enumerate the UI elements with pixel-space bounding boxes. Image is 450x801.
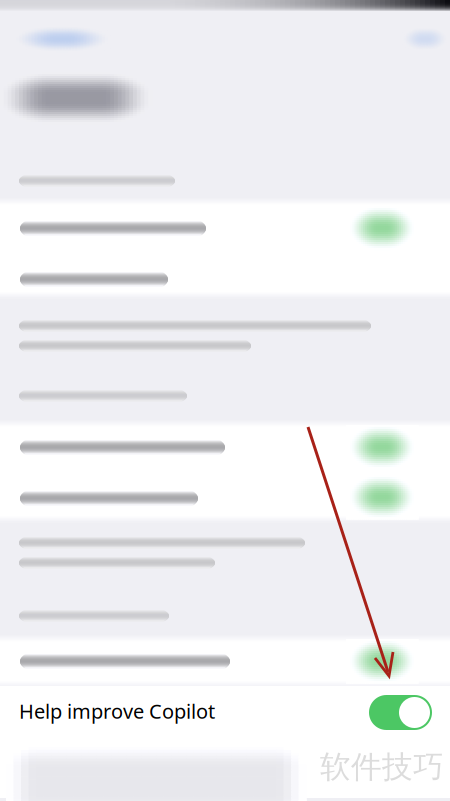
button[interactable]: Setting 1 [0, 198, 450, 248]
button[interactable]: Done [0, 0, 450, 801]
button[interactable]: Help improve Copilot [0, 686, 450, 738]
button[interactable]: Setting 5 [0, 635, 450, 687]
button[interactable]: Setting 2 [0, 248, 450, 298]
button[interactable]: Setting 3 [0, 420, 450, 471]
staticText: 软件技巧 [320, 748, 444, 786]
button[interactable]: Setting 4 [0, 471, 450, 522]
button[interactable]: Back [0, 0, 450, 801]
staticText: Help improve Copilot [19, 698, 215, 724]
